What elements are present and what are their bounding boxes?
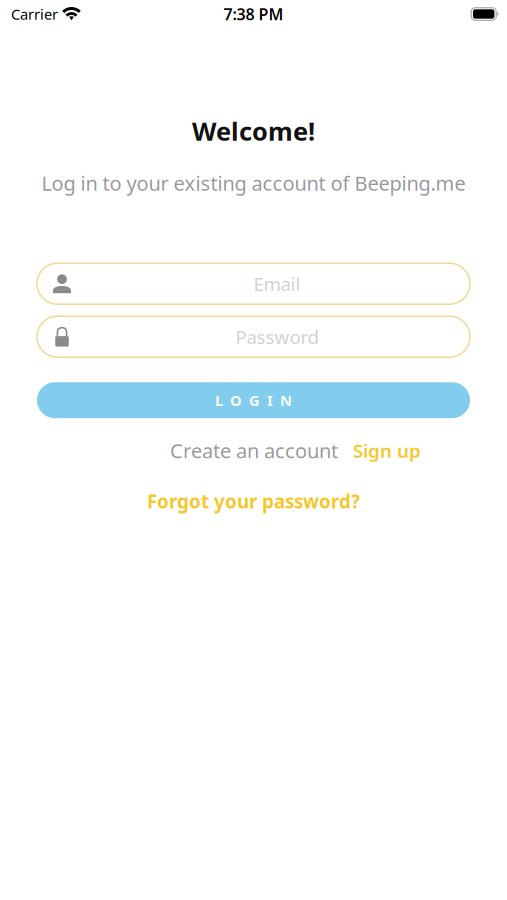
- staticText: Email: [253, 271, 300, 296]
- staticText: Forgot your password?: [147, 489, 360, 514]
- staticText: 7:38 PM: [223, 3, 283, 25]
- staticText: Carrier: [11, 4, 58, 24]
- staticText: Welcome!: [192, 114, 315, 148]
- button[interactable]: Sign up: [338, 438, 421, 463]
- staticText: LOGIN: [215, 390, 292, 410]
- button[interactable]: LOGIN: [37, 382, 470, 418]
- staticText: Create an account: [170, 437, 338, 464]
- button[interactable]: Email: [37, 263, 470, 304]
- button[interactable]: Forgot your password?: [147, 489, 360, 514]
- staticText: Sign up: [353, 438, 421, 463]
- button[interactable]: Password: [37, 316, 470, 357]
- staticText: Log in to your existing account of Beepi…: [41, 170, 465, 196]
- staticText: Password: [235, 324, 318, 349]
